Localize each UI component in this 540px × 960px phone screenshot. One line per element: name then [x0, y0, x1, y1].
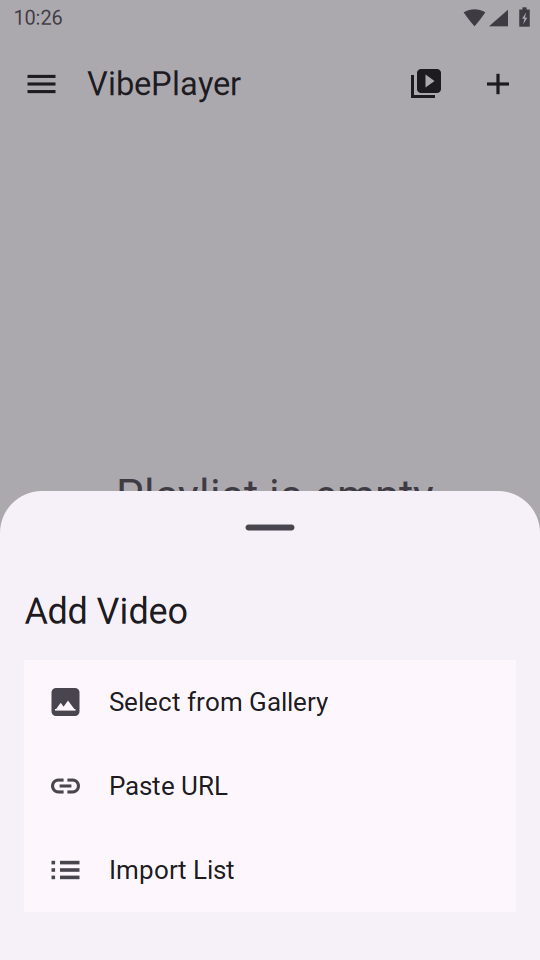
staticText: Paste URL: [109, 771, 228, 801]
button[interactable]: Open navigation menu: [17, 60, 65, 108]
button[interactable]: Drag handle: [222, 511, 318, 543]
button[interactable]: Add video: [474, 60, 522, 108]
button[interactable]: Paste URL: [24, 744, 516, 828]
button[interactable]: Video library: [402, 60, 450, 108]
staticText: Select from Gallery: [109, 687, 328, 717]
staticText: Import List: [109, 855, 235, 885]
staticText: Playlist is empty: [116, 470, 434, 522]
button[interactable]: Select from Gallery: [24, 660, 516, 744]
button[interactable]: Import List: [24, 828, 516, 912]
staticText: Add Video: [24, 590, 188, 633]
staticText: VibePlayer: [87, 65, 241, 103]
staticText: 10:26: [13, 6, 62, 30]
